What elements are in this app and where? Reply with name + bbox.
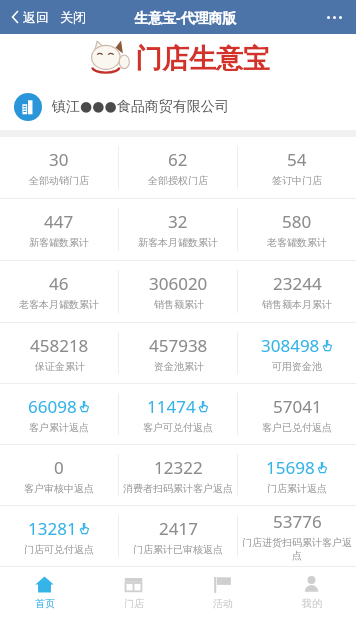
staticText: 客户审核中返点 (24, 482, 94, 495)
staticText: 新客罐数累计 (29, 236, 89, 249)
button[interactable]: 458218 (0, 323, 118, 383)
button[interactable]: 62 (119, 137, 237, 198)
button[interactable]: 308498 (238, 323, 356, 383)
staticText: 306020 (149, 272, 208, 295)
staticText: 15698 (266, 456, 315, 479)
staticText: 580 (282, 210, 312, 233)
staticText: 生意宝-代理商版 (134, 8, 237, 27)
button[interactable]: 457938 (119, 323, 237, 383)
button[interactable]: 447 (0, 199, 118, 260)
button[interactable]: 2417 (119, 506, 237, 566)
staticText: 308498 (261, 334, 320, 357)
staticText: 销售额累计 (154, 298, 204, 311)
button[interactable]: 12322 (119, 445, 237, 505)
button[interactable]: 活动 (178, 567, 267, 618)
staticText: 12322 (154, 456, 203, 479)
staticText: 53776 (273, 510, 322, 533)
button[interactable]: 53776 (238, 506, 356, 566)
staticText: 活动 (213, 597, 233, 610)
staticText: 门店可兑付返点 (24, 543, 94, 556)
button[interactable]: 我的 (267, 567, 356, 618)
button[interactable]: 13281 (0, 506, 118, 566)
button[interactable]: 57041 (238, 384, 356, 444)
staticText: 门店生意宝 (135, 42, 270, 76)
staticText: 客户已兑付返点 (262, 421, 332, 434)
staticText: 23244 (273, 272, 322, 295)
staticText: 保证金累计 (35, 360, 85, 373)
staticText: 32 (168, 210, 188, 233)
button[interactable]: 32 (119, 199, 237, 260)
button[interactable]: 0 (0, 445, 118, 505)
button[interactable]: 46 (0, 261, 118, 322)
other: Back (12, 11, 19, 23)
button[interactable]: 580 (238, 199, 356, 260)
staticText: 66098 (28, 395, 77, 418)
button[interactable]: More options (321, 10, 348, 25)
staticText: 门店进货扫码累计客户返点 (241, 536, 353, 562)
staticText: 返回 (23, 9, 49, 25)
staticText: 0 (54, 456, 64, 479)
staticText: 我的 (302, 597, 322, 610)
staticText: 老客本月罐数累计 (19, 298, 99, 311)
button[interactable]: 首页 (0, 567, 89, 618)
button[interactable]: 门店 (89, 567, 178, 618)
staticText: 全部授权门店 (148, 174, 208, 187)
staticText: 签订中门店 (272, 174, 322, 187)
staticText: 30 (49, 148, 69, 171)
staticText: 全部动销门店 (29, 174, 89, 187)
button[interactable]: 54 (238, 137, 356, 198)
staticText: 门店 (124, 597, 144, 610)
button[interactable]: 306020 (119, 261, 237, 322)
button[interactable]: 15698 (238, 445, 356, 505)
staticText: 客户可兑付返点 (143, 421, 213, 434)
staticText: 老客罐数累计 (267, 236, 327, 249)
staticText: 销售额本月累计 (262, 298, 332, 311)
button[interactable]: 66098 (0, 384, 118, 444)
staticText: 458218 (30, 334, 89, 357)
button[interactable]: 30 (0, 137, 118, 198)
staticText: 新客本月罐数累计 (138, 236, 218, 249)
staticText: 资金池累计 (154, 360, 204, 373)
staticText: 门店累计已审核返点 (133, 543, 223, 556)
staticText: 46 (49, 272, 69, 295)
button[interactable]: Back (8, 6, 53, 28)
button[interactable]: 11474 (119, 384, 237, 444)
staticText: 镇江●●●食品商贸有限公司 (52, 98, 229, 116)
staticText: 消费者扫码累计客户返点 (123, 482, 233, 495)
staticText: 客户累计返点 (29, 421, 89, 434)
button[interactable]: 关闭 (57, 6, 89, 28)
button[interactable]: 23244 (238, 261, 356, 322)
staticText: 2417 (159, 517, 198, 540)
staticText: 关闭 (60, 9, 86, 25)
button[interactable]: 镇江●●●食品商贸有限公司 (0, 84, 356, 130)
staticText: 447 (44, 210, 74, 233)
staticText: 457938 (149, 334, 208, 357)
staticText: 可用资金池 (272, 360, 322, 373)
staticText: 54 (287, 148, 307, 171)
staticText: 门店累计返点 (267, 482, 327, 495)
staticText: 57041 (273, 395, 322, 418)
staticText: 首页 (35, 597, 55, 610)
staticText: 13281 (28, 517, 77, 540)
staticText: 11474 (147, 395, 196, 418)
staticText: 62 (168, 148, 188, 171)
